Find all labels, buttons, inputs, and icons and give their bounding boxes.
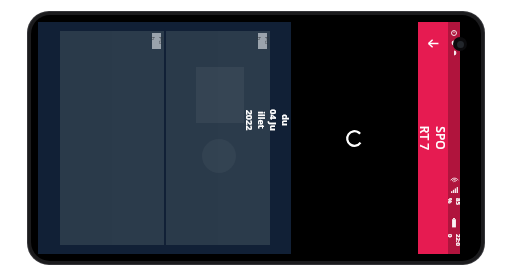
staticText: SPORT7 du 04 Juillet 2022: [244, 109, 316, 131]
button[interactable]: Pub: [60, 31, 164, 245]
staticText: 85%: [446, 198, 462, 210]
button[interactable]: SPORT 7: [417, 123, 449, 153]
staticText: SPORT 7: [417, 123, 449, 153]
staticText: Pub: [148, 36, 164, 45]
button[interactable]: Back: [422, 32, 444, 54]
staticText: Pub: [254, 36, 270, 45]
button[interactable]: Pub: [258, 33, 267, 49]
staticText: 22:00: [446, 234, 462, 246]
button[interactable]: Pub: [152, 33, 161, 49]
button[interactable]: Pub: [166, 31, 270, 245]
